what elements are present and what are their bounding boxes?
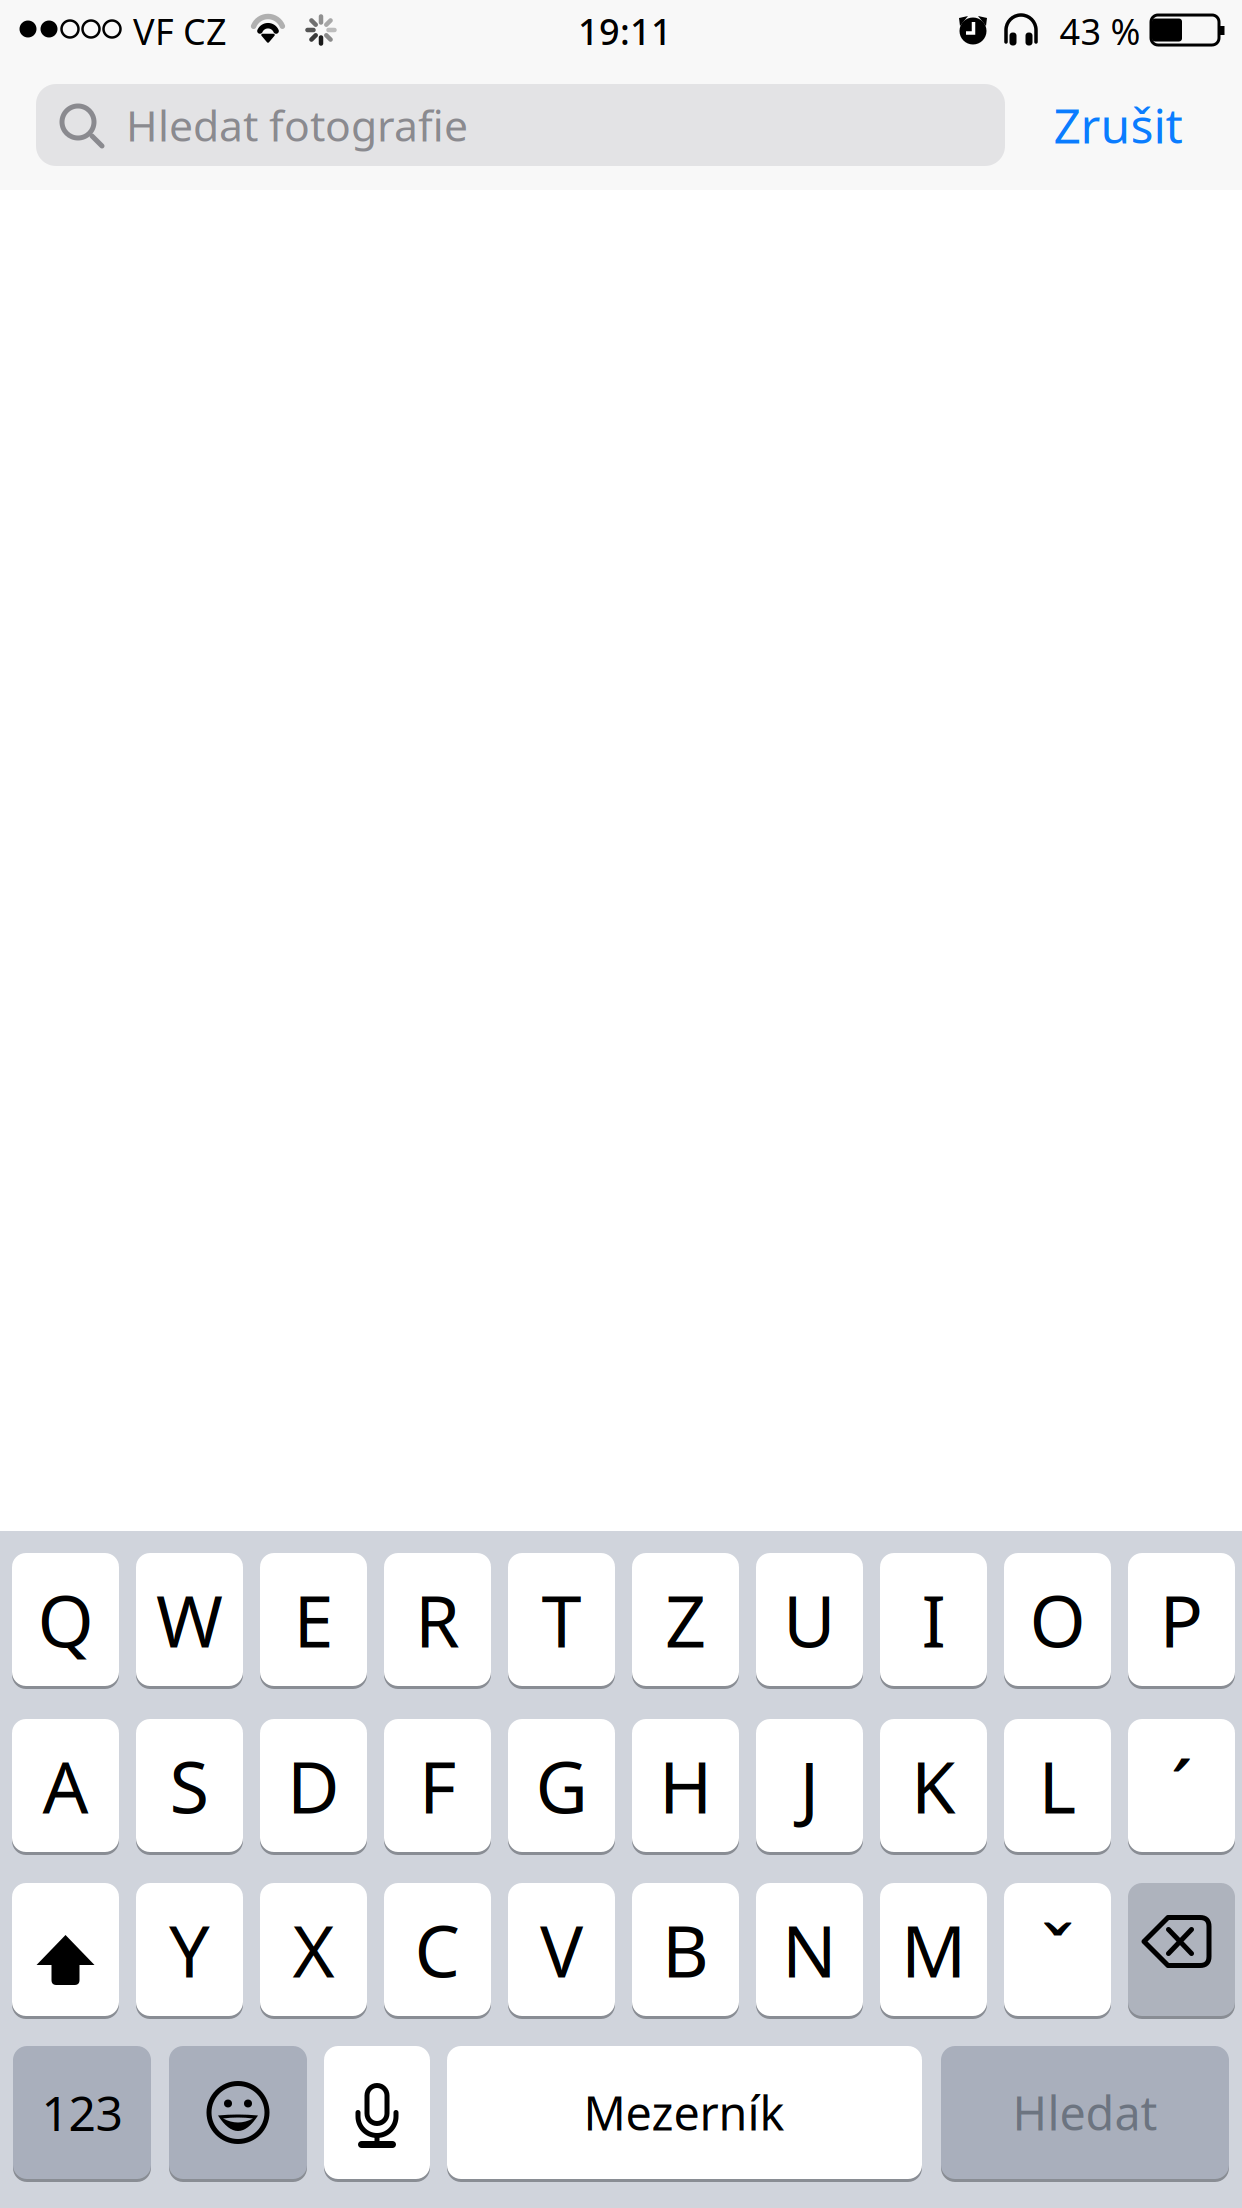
staticText: P	[1159, 1572, 1203, 1667]
staticText: ´	[1170, 1736, 1192, 1843]
staticText: H	[659, 1738, 712, 1833]
button[interactable]: E	[0, 0, 1242, 2208]
button[interactable]: Shift	[0, 0, 1242, 2208]
button[interactable]: Q	[0, 0, 1242, 2208]
staticText: M	[901, 1902, 966, 1997]
button[interactable]: Y	[0, 0, 1242, 2208]
button[interactable]: Z	[0, 0, 1242, 2208]
staticText: 43 %	[1059, 7, 1140, 55]
staticText: K	[911, 1738, 956, 1833]
button[interactable]: Zrušit	[1018, 75, 1218, 175]
button[interactable]: Hledat	[0, 0, 1242, 2208]
button[interactable]: W	[0, 0, 1242, 2208]
staticText: G	[535, 1738, 587, 1833]
staticText: J	[799, 1738, 819, 1833]
staticText: O	[1029, 1572, 1085, 1667]
button[interactable]: Mezerník	[0, 0, 1242, 2208]
button[interactable]: H	[0, 0, 1242, 2208]
button[interactable]: Dictate	[0, 0, 1242, 2208]
button[interactable]: B	[0, 0, 1242, 2208]
staticText: V	[540, 1902, 583, 1997]
button[interactable]: Backspace	[0, 0, 1242, 2208]
button[interactable]: Hledat fotografie	[0, 0, 1242, 2208]
staticText: X	[292, 1902, 334, 1997]
staticText: S	[169, 1738, 209, 1833]
staticText: VF CZ	[133, 7, 227, 55]
staticText: C	[414, 1902, 460, 1997]
button[interactable]: V	[0, 0, 1242, 2208]
button[interactable]: P	[0, 0, 1242, 2208]
staticText: 19:11	[578, 7, 672, 55]
staticText: B	[662, 1902, 709, 1997]
staticText: Y	[169, 1902, 210, 1997]
button[interactable]: J	[0, 0, 1242, 2208]
button[interactable]: L	[0, 0, 1242, 2208]
button[interactable]: N	[0, 0, 1242, 2208]
staticText: N	[782, 1902, 837, 1997]
button[interactable]: A	[0, 0, 1242, 2208]
button[interactable]: I	[0, 0, 1242, 2208]
staticText: Q	[37, 1572, 93, 1667]
button[interactable]: C	[0, 0, 1242, 2208]
button[interactable]: ˇ	[0, 0, 1242, 2208]
staticText: Zrušit	[1053, 93, 1182, 157]
button[interactable]: ´	[0, 0, 1242, 2208]
staticText: R	[415, 1572, 460, 1667]
button[interactable]: S	[0, 0, 1242, 2208]
button[interactable]: K	[0, 0, 1242, 2208]
button[interactable]: T	[0, 0, 1242, 2208]
staticText: 123	[41, 2081, 122, 2144]
button[interactable]: X	[0, 0, 1242, 2208]
staticText: Z	[665, 1572, 706, 1667]
staticText: A	[42, 1738, 88, 1833]
staticText: F	[419, 1738, 456, 1833]
staticText: Hledat fotografie	[126, 97, 468, 153]
staticText: E	[293, 1572, 333, 1667]
staticText: D	[287, 1738, 340, 1833]
button[interactable]: U	[0, 0, 1242, 2208]
staticText: Mezerník	[583, 2081, 784, 2143]
staticText: ˇ	[1041, 1900, 1074, 2007]
button[interactable]: M	[0, 0, 1242, 2208]
staticText: T	[541, 1572, 581, 1667]
staticText: Hledat	[1012, 2081, 1157, 2143]
staticText: L	[1038, 1738, 1076, 1833]
button[interactable]: 123	[0, 0, 1242, 2208]
button[interactable]: O	[0, 0, 1242, 2208]
button[interactable]: D	[0, 0, 1242, 2208]
staticText: W	[156, 1572, 223, 1667]
button[interactable]: R	[0, 0, 1242, 2208]
button[interactable]: Emoji	[0, 0, 1242, 2208]
button[interactable]: F	[0, 0, 1242, 2208]
button[interactable]: G	[0, 0, 1242, 2208]
staticText: I	[921, 1572, 945, 1667]
staticText: U	[783, 1572, 836, 1667]
